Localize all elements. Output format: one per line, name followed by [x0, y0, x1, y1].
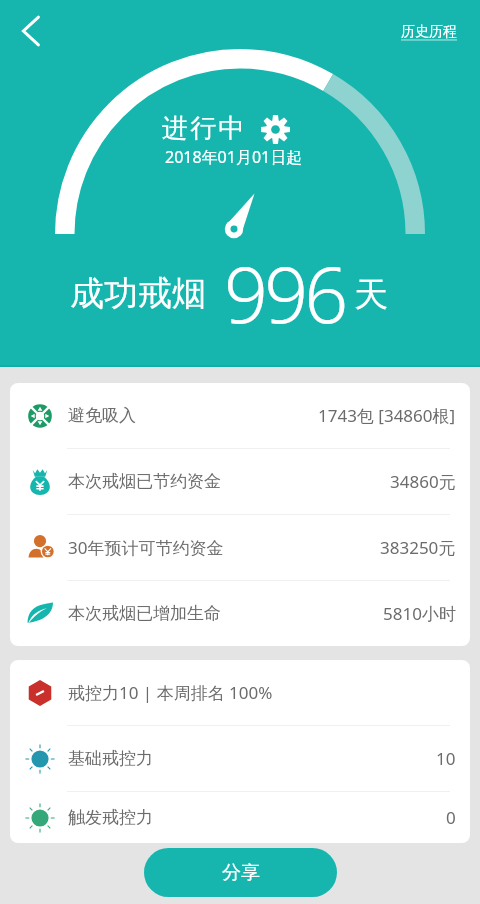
staticText: 天: [354, 273, 388, 316]
staticText: 基础戒控力: [68, 748, 153, 769]
staticText: 996: [224, 241, 345, 346]
button[interactable]: 本次戒烟已增加生命: [10, 581, 470, 646]
button[interactable]: 基础戒控力: [10, 726, 470, 791]
button[interactable]: 历史历程: [401, 23, 457, 41]
staticText: 成功戒烟: [70, 272, 206, 315]
staticText: 戒控力10 | 本周排名 100%: [68, 681, 273, 704]
staticText: 0: [446, 806, 456, 829]
staticText: 本次戒烟已增加生命: [68, 603, 221, 624]
button[interactable]: 本次戒烟已节约资金: [10, 449, 470, 514]
staticText: 进行中: [162, 112, 247, 145]
staticText: 30年预计可节约资金: [68, 536, 224, 559]
button[interactable]: Settings: [261, 115, 290, 144]
button[interactable]: 分享: [144, 848, 337, 897]
staticText: 本次戒烟已节约资金: [68, 471, 221, 492]
staticText: 历史历程: [401, 23, 457, 41]
button[interactable]: 戒控力10 | 本周排名 100%: [10, 660, 470, 725]
staticText: 2018年01月01日起: [165, 146, 303, 168]
staticText: 5810小时: [383, 602, 456, 625]
staticText: 1743包 [34860根]: [318, 404, 456, 427]
staticText: 避免吸入: [68, 405, 136, 426]
staticText: 383250元: [380, 536, 456, 559]
button[interactable]: 触发戒控力: [10, 792, 470, 843]
staticText: 触发戒控力: [68, 807, 153, 828]
staticText: 分享: [222, 861, 260, 885]
staticText: 10: [436, 747, 456, 770]
button[interactable]: 30年预计可节约资金: [10, 515, 470, 580]
button[interactable]: 避免吸入: [10, 383, 470, 448]
staticText: 34860元: [390, 470, 456, 493]
button[interactable]: Back: [6, 6, 56, 56]
